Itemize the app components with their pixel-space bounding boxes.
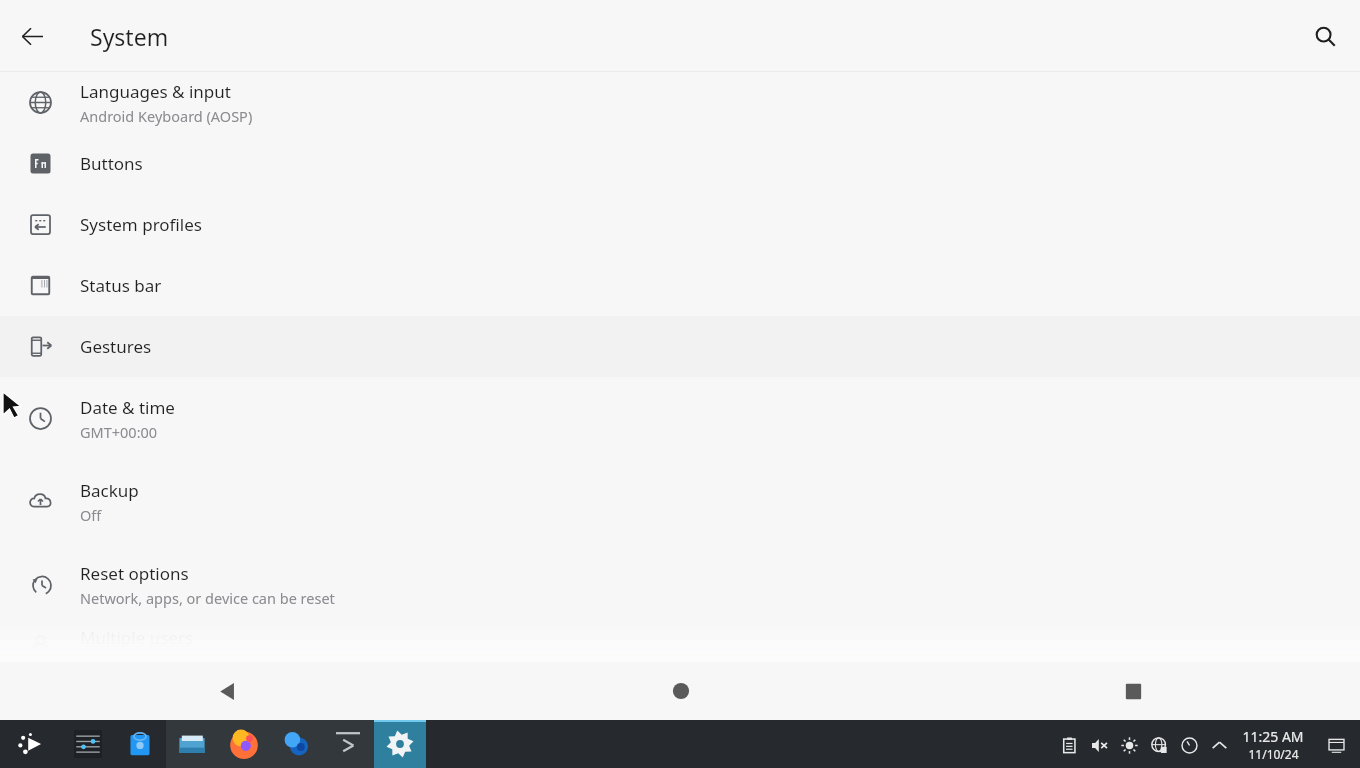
- button[interactable]: Discover: [114, 720, 166, 768]
- staticText: Date & time: [80, 396, 175, 419]
- button[interactable]: Terminal window: [322, 720, 374, 768]
- button[interactable]: Show hidden icons: [1204, 730, 1234, 760]
- button[interactable]: Date & time: [0, 377, 1360, 460]
- staticText: Buttons: [80, 152, 143, 175]
- button[interactable]: Back: [0, 662, 454, 720]
- button[interactable]: Recents: [907, 662, 1360, 720]
- button[interactable]: File manager window: [166, 720, 218, 768]
- button[interactable]: Firefox window: [218, 720, 270, 768]
- button[interactable]: Gestures: [0, 316, 1360, 377]
- button[interactable]: Network: [1144, 730, 1174, 760]
- button[interactable]: Backup: [0, 460, 1360, 543]
- button[interactable]: Battery: [1174, 730, 1204, 760]
- button[interactable]: Brightness: [1114, 730, 1144, 760]
- button[interactable]: Reset options: [0, 543, 1360, 626]
- button[interactable]: Languages & input: [0, 72, 1360, 133]
- button[interactable]: 11:25 AM: [1240, 727, 1306, 762]
- staticText: Reset options: [80, 562, 189, 585]
- button[interactable]: Buttons: [0, 133, 1360, 194]
- button[interactable]: Dolphin window: [270, 720, 322, 768]
- button[interactable]: Status bar: [0, 255, 1360, 316]
- staticText: Off: [80, 505, 102, 525]
- button[interactable]: Back: [8, 12, 56, 60]
- staticText: System: [90, 21, 169, 52]
- button[interactable]: Clipboard: [1054, 730, 1084, 760]
- button[interactable]: Home: [454, 662, 907, 720]
- staticText: Status bar: [80, 274, 162, 297]
- staticText: GMT+00:00: [80, 422, 158, 442]
- button[interactable]: Audio mixer: [62, 720, 114, 768]
- staticText: 11/10/24: [1248, 746, 1299, 762]
- button[interactable]: Application launcher: [0, 720, 62, 768]
- staticText: Gestures: [80, 335, 152, 358]
- staticText: Backup: [80, 479, 139, 502]
- button[interactable]: System profiles: [0, 194, 1360, 255]
- staticText: Network, apps, or device can be reset: [80, 588, 335, 608]
- button[interactable]: Volume muted: [1084, 730, 1114, 760]
- button[interactable]: Show desktop: [1320, 729, 1352, 761]
- button[interactable]: Settings window: [374, 720, 426, 768]
- staticText: System profiles: [80, 213, 202, 236]
- staticText: 11:25 AM: [1242, 727, 1304, 746]
- button[interactable]: Search: [1301, 12, 1349, 60]
- staticText: Languages & input: [80, 80, 231, 103]
- staticText: Android Keyboard (AOSP): [80, 106, 253, 126]
